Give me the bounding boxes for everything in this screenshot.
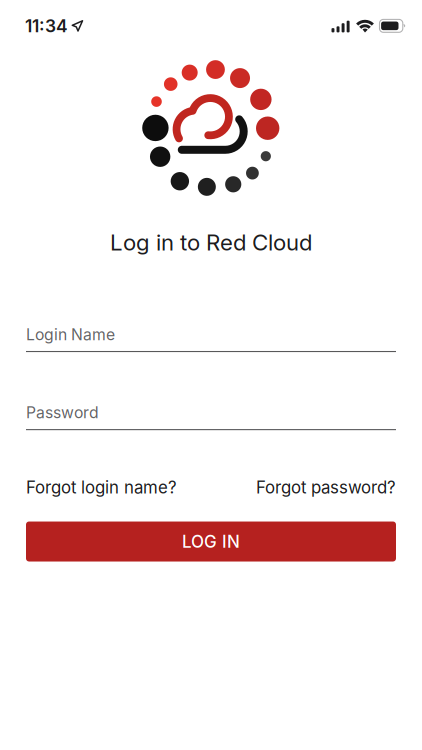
button[interactable]: Forgot login name? [26,477,177,497]
staticText: Forgot login name? [26,477,177,497]
staticText: Log in to Red Cloud [110,229,312,256]
staticText: Password [26,403,99,422]
staticText: Forgot password? [256,477,396,497]
button[interactable]: Forgot password? [256,477,396,497]
staticText: LOG IN [182,531,240,552]
staticText: Login Name [26,325,115,344]
staticText: 11:34 [25,15,68,36]
button[interactable]: LOG IN [26,521,396,561]
